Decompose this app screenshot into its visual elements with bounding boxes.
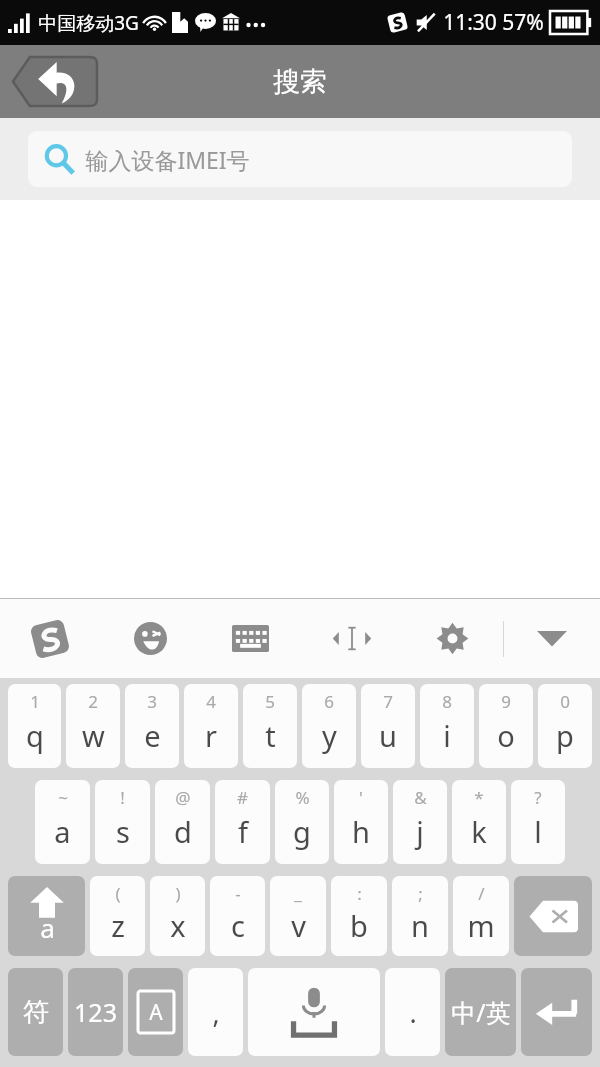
staticText: ~ [58,786,68,809]
staticText: z [111,906,125,945]
button[interactable]: Enter [521,968,592,1056]
button[interactable]: 3 [125,684,179,768]
staticText: 3 [147,690,157,713]
staticText: 4 [206,690,216,713]
staticText: ) [175,882,181,905]
staticText: A [149,998,163,1027]
button[interactable]: : [331,876,387,956]
staticText: q [26,716,44,755]
staticText: n [411,906,429,945]
staticText: # [237,786,248,809]
staticText: 11:30 [443,8,497,37]
button[interactable]: 2 [66,684,120,768]
staticText: f [238,812,248,851]
staticText: ( [115,882,121,905]
button[interactable]: 5 [243,684,297,768]
staticText: 7 [383,690,393,713]
button[interactable]: ? [511,780,565,864]
staticText: v [291,906,306,945]
button[interactable]: 4 [184,684,238,768]
button[interactable]: ( [90,876,145,956]
staticText: t [265,716,276,755]
button[interactable]: 1 [8,684,61,768]
button[interactable]: Emoji [100,599,200,678]
button[interactable]: 符 [8,968,63,1056]
button[interactable]: , [188,968,243,1056]
staticText: l [534,812,542,851]
staticText: r [205,716,217,755]
button[interactable]: . [385,968,440,1056]
staticText: c [231,906,245,945]
staticText: , [212,994,220,1031]
button[interactable]: ~ [35,780,90,864]
staticText: 中/英 [451,995,511,1029]
staticText: k [471,812,487,851]
staticText: 6 [324,690,334,713]
staticText: 中国移动3G [38,10,139,36]
staticText: y [322,716,337,755]
button[interactable]: @ [155,780,210,864]
button[interactable]: 6 [302,684,356,768]
button[interactable]: 123 [68,968,123,1056]
button[interactable]: 7 [361,684,415,768]
button[interactable]: / [453,876,509,956]
button[interactable]: ' [334,780,388,864]
button[interactable]: Settings [402,599,503,678]
button[interactable]: 0 [538,684,592,768]
staticText: 输入设备IMEI号 [85,144,250,175]
button[interactable]: Move cursor [301,599,402,678]
staticText: ? [534,786,542,809]
staticText: g [293,812,311,851]
staticText: s [116,812,130,851]
staticText: % [295,786,310,809]
staticText: ! [120,786,125,809]
staticText: 8 [442,690,452,713]
staticText: 2 [88,690,98,713]
staticText: 1 [30,690,40,713]
staticText: _ [294,882,302,905]
button[interactable]: Backspace [514,876,592,956]
staticText: p [556,716,574,755]
button[interactable]: # [215,780,270,864]
staticText: ; [418,882,423,905]
button[interactable]: & [393,780,447,864]
staticText: m [467,906,495,945]
staticText: d [174,812,192,851]
staticText: / [478,882,485,905]
staticText: & [414,786,427,809]
staticText: b [350,906,368,945]
button[interactable]: % [275,780,329,864]
staticText: w [82,716,105,755]
button[interactable]: _ [270,876,326,956]
button[interactable]: Sogou input [0,599,100,678]
button[interactable]: ) [150,876,205,956]
staticText: 9 [501,690,511,713]
staticText: a [54,812,71,851]
button[interactable]: 中/英 [445,968,516,1056]
button[interactable]: ! [95,780,150,864]
staticText: ' [359,786,363,809]
staticText: x [170,906,186,945]
button[interactable]: * [452,780,506,864]
button[interactable]: 输入设备IMEI号 [28,131,572,187]
staticText: @ [175,786,191,809]
staticText: i [443,716,451,755]
button[interactable]: Space and voice input [248,968,380,1056]
staticText: 5 [265,690,275,713]
staticText: j [416,812,424,851]
button[interactable]: - [210,876,265,956]
staticText: * [474,786,484,809]
button[interactable]: ; [392,876,448,956]
button[interactable]: 8 [420,684,474,768]
button[interactable]: Hide keyboard [504,599,600,678]
button[interactable]: 9 [479,684,533,768]
staticText: o [497,716,515,755]
button[interactable]: Shift [8,876,85,956]
staticText: . [409,994,417,1031]
staticText: u [379,716,397,755]
button[interactable]: Keyboard layout [200,599,301,678]
staticText: h [352,812,370,851]
staticText: 57% [502,8,544,37]
button[interactable]: Back [13,57,97,106]
button[interactable]: Switch input language [128,968,183,1056]
